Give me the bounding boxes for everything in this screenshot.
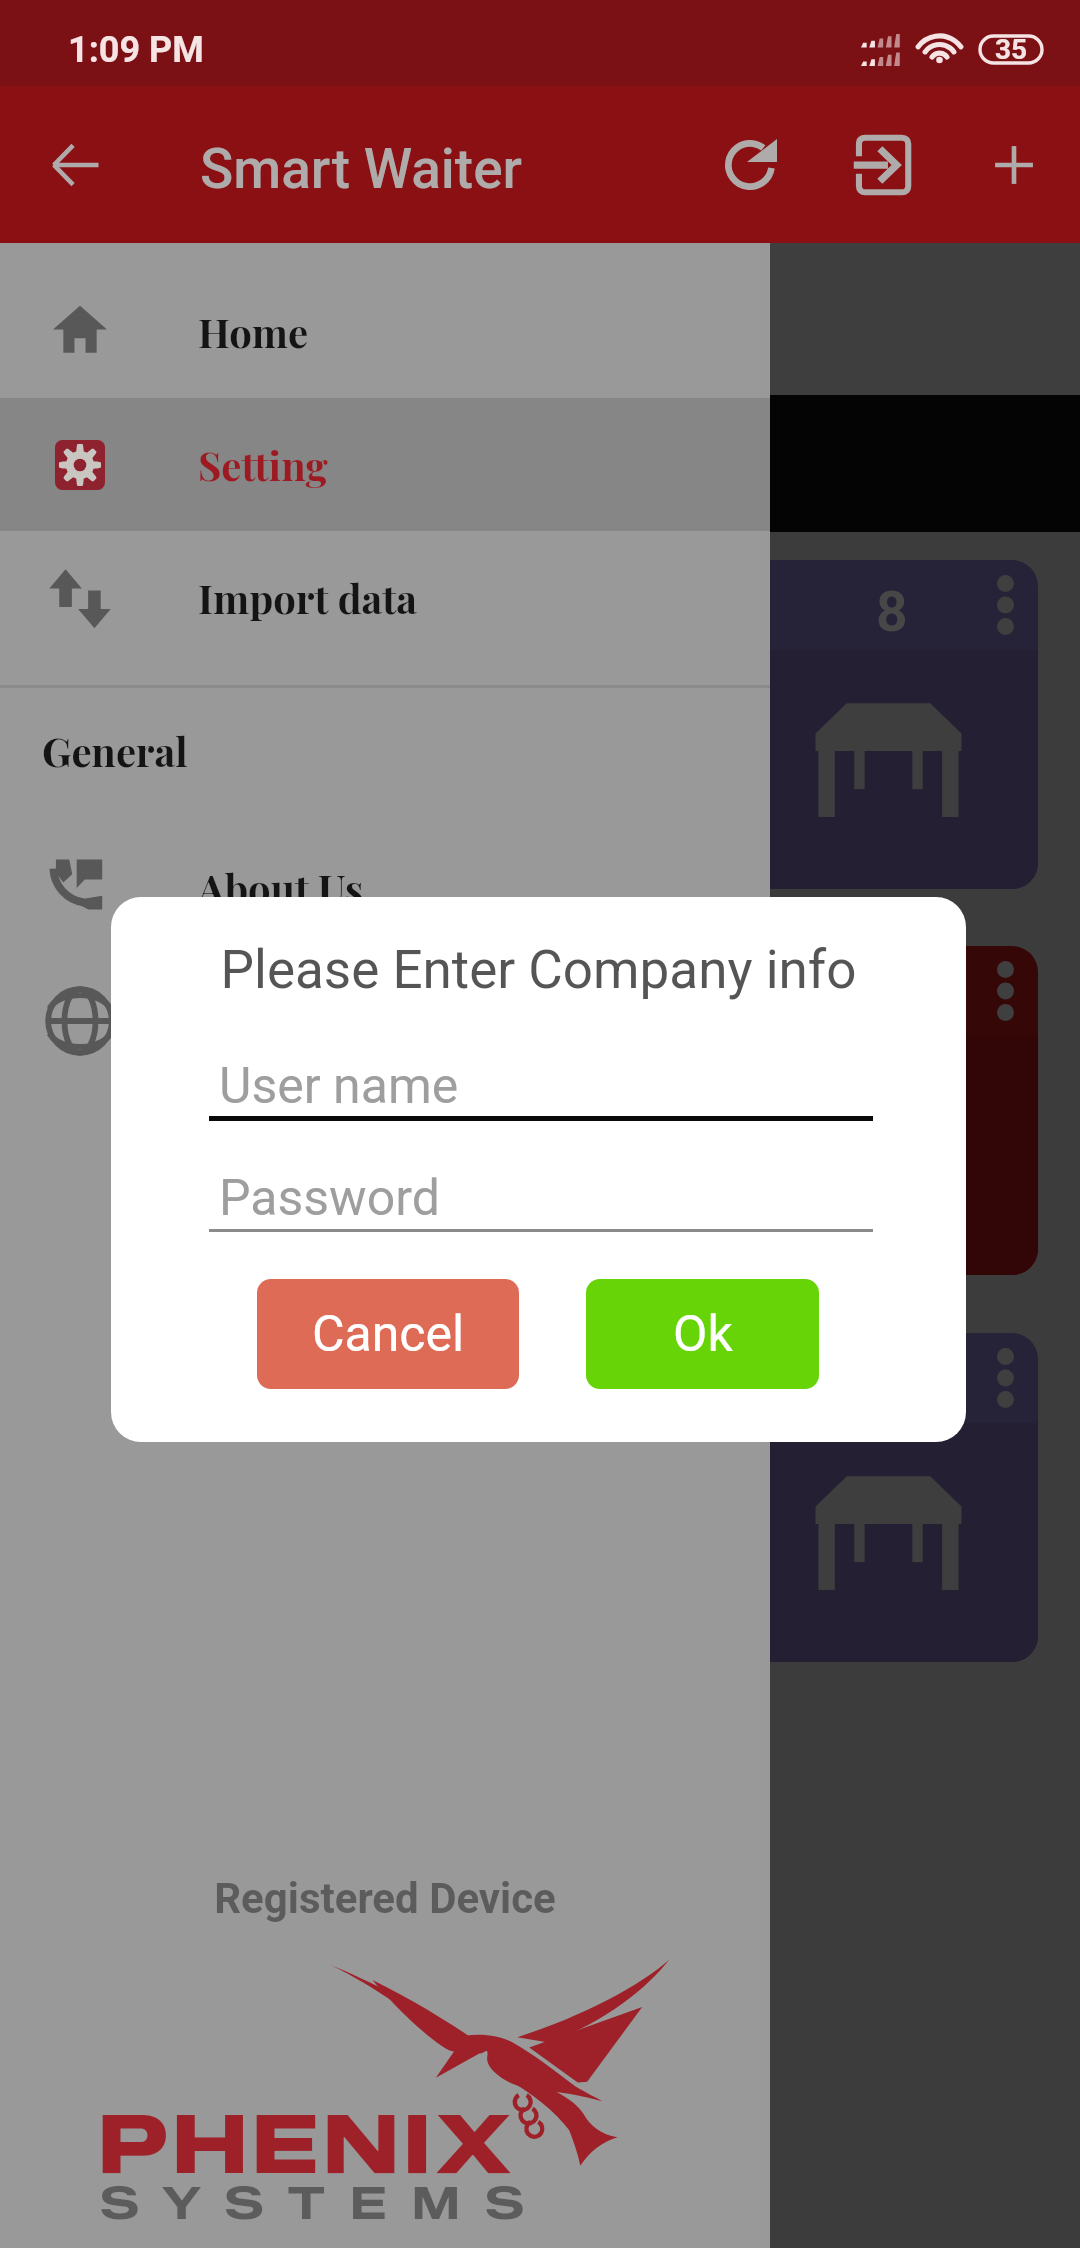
button[interactable]: About Us: [0, 821, 770, 954]
staticText: Please Enter Company info: [111, 939, 966, 1001]
button[interactable]: Home: [0, 265, 770, 398]
staticText: Ok: [673, 1305, 733, 1364]
staticText: Smart Waiter: [200, 137, 523, 201]
staticText: 8: [876, 580, 908, 644]
staticText: PHENIX: [98, 2095, 517, 2193]
staticText: Import data: [198, 571, 418, 624]
button[interactable]: Import data: [0, 531, 770, 664]
staticText: Password: [219, 1169, 440, 1228]
button[interactable]: Refresh: [690, 105, 810, 225]
staticText: SYSTEMS: [100, 2176, 550, 2231]
staticText: Registered Device: [0, 1874, 770, 1923]
staticText: Home: [198, 305, 309, 358]
staticText: User name: [219, 1057, 459, 1116]
button[interactable]: Setting: [0, 398, 770, 531]
button[interactable]: Ok: [586, 1279, 819, 1389]
button[interactable]: Language: [0, 954, 770, 1087]
staticText: Setting: [198, 438, 328, 491]
button[interactable]: Login: [821, 105, 941, 225]
button[interactable]: Add: [954, 105, 1074, 225]
staticText: 1:09 PM: [68, 29, 204, 71]
button[interactable]: Back: [22, 112, 128, 218]
staticText: 35: [995, 33, 1028, 64]
staticText: About Us: [198, 861, 364, 914]
staticText: General: [42, 724, 188, 777]
staticText: Cancel: [312, 1305, 465, 1364]
button[interactable]: Cancel: [257, 1279, 519, 1389]
